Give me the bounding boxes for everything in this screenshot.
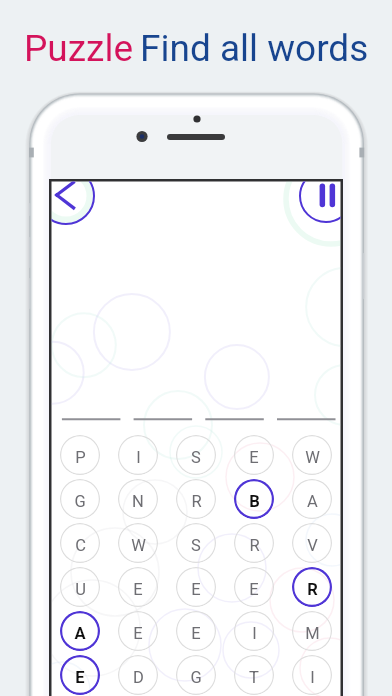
button[interactable]: W bbox=[118, 523, 158, 563]
button[interactable]: R bbox=[176, 479, 216, 519]
staticText: U bbox=[75, 580, 86, 599]
button[interactable]: N bbox=[118, 479, 158, 519]
staticText: E bbox=[249, 448, 259, 467]
button[interactable]: R bbox=[292, 567, 332, 607]
staticText: R bbox=[249, 536, 260, 555]
button[interactable]: W bbox=[292, 435, 332, 475]
staticText: C bbox=[75, 536, 86, 555]
staticText: E bbox=[133, 624, 143, 643]
staticText: E bbox=[249, 580, 259, 599]
button[interactable]: E bbox=[118, 611, 158, 651]
button[interactable]: E bbox=[176, 567, 216, 607]
staticText: Puzzle bbox=[24, 27, 134, 70]
button[interactable]: E bbox=[234, 435, 274, 475]
button[interactable]: B bbox=[234, 479, 274, 519]
staticText: V bbox=[307, 536, 318, 555]
button[interactable]: M bbox=[292, 611, 332, 651]
button[interactable]: T bbox=[234, 655, 274, 695]
button[interactable]: S bbox=[176, 435, 216, 475]
button[interactable]: I bbox=[292, 655, 332, 695]
staticText: E bbox=[75, 668, 85, 687]
button[interactable]: P bbox=[60, 435, 100, 475]
button[interactable]: E bbox=[60, 655, 100, 695]
staticText: P bbox=[75, 448, 86, 467]
staticText: G bbox=[190, 668, 202, 687]
button[interactable]: I bbox=[234, 611, 274, 651]
staticText: T bbox=[249, 668, 259, 687]
staticText: I bbox=[252, 624, 257, 643]
staticText: M bbox=[305, 624, 320, 643]
button[interactable]: E bbox=[118, 567, 158, 607]
button[interactable]: U bbox=[60, 567, 100, 607]
staticText: R bbox=[191, 492, 202, 511]
staticText: W bbox=[305, 448, 320, 467]
button[interactable]: V bbox=[292, 523, 332, 563]
button[interactable]: S bbox=[176, 523, 216, 563]
staticText: A bbox=[307, 492, 318, 511]
staticText: S bbox=[191, 536, 201, 555]
staticText: W bbox=[131, 536, 146, 555]
staticText: E bbox=[133, 580, 143, 599]
staticText: R bbox=[307, 580, 318, 599]
button[interactable]: A bbox=[60, 611, 100, 651]
staticText: A bbox=[74, 624, 86, 643]
button[interactable]: G bbox=[176, 655, 216, 695]
staticText: N bbox=[132, 492, 144, 511]
button[interactable]: D bbox=[118, 655, 158, 695]
button[interactable]: E bbox=[176, 611, 216, 651]
staticText: G bbox=[74, 492, 86, 511]
button[interactable]: Pause bbox=[300, 181, 343, 224]
staticText: S bbox=[191, 448, 201, 467]
button[interactable]: C bbox=[60, 523, 100, 563]
button[interactable]: E bbox=[234, 567, 274, 607]
button[interactable]: A bbox=[292, 479, 332, 519]
staticText: E bbox=[191, 624, 201, 643]
button[interactable]: Back bbox=[51, 181, 95, 225]
button[interactable]: I bbox=[118, 435, 158, 475]
staticText: I bbox=[310, 668, 315, 687]
staticText: Find all words bbox=[140, 27, 369, 70]
staticText: E bbox=[191, 580, 201, 599]
button[interactable]: R bbox=[234, 523, 274, 563]
button[interactable]: G bbox=[60, 479, 100, 519]
staticText: B bbox=[249, 492, 260, 511]
staticText: D bbox=[133, 668, 144, 687]
staticText: I bbox=[136, 448, 141, 467]
